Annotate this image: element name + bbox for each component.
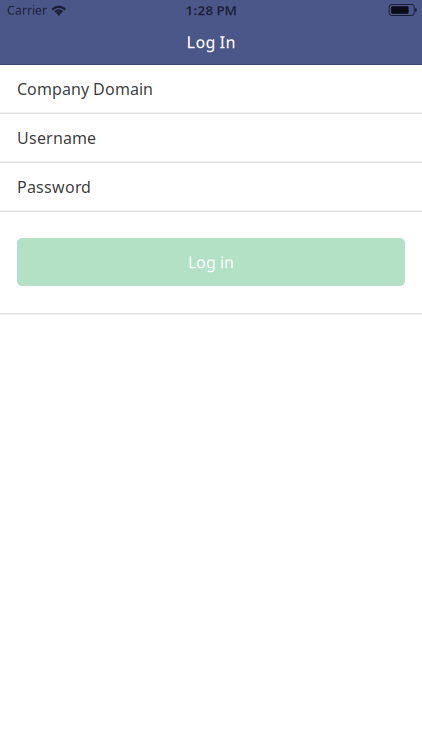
staticText: Log In — [186, 31, 235, 53]
staticText: Carrier — [7, 2, 47, 18]
staticText: Password — [17, 176, 91, 197]
button[interactable]: Username — [0, 114, 422, 163]
button[interactable]: Password — [0, 163, 422, 212]
staticText: Log in — [188, 251, 234, 273]
staticText: Username — [17, 127, 96, 148]
button[interactable]: Log in — [17, 238, 405, 286]
staticText: 1:28 PM — [185, 1, 236, 19]
staticText: Company Domain — [17, 78, 153, 99]
button[interactable]: Company Domain — [0, 65, 422, 114]
